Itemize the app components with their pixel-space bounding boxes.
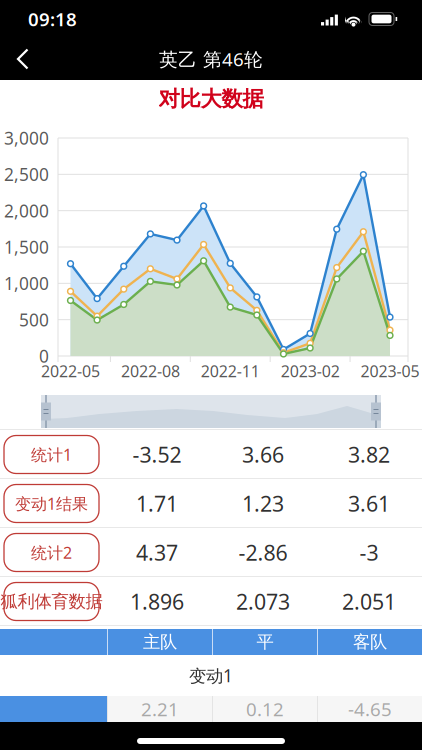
button[interactable]: 统计1	[4, 435, 99, 473]
staticText: 英乙 第46轮	[159, 47, 263, 71]
staticText: 主队	[143, 631, 177, 653]
staticText: 客队	[353, 631, 387, 653]
staticText: 2,500	[4, 163, 49, 186]
staticText: 2.073	[236, 587, 290, 616]
staticText: 3.66	[242, 440, 284, 469]
staticText: -4.65	[348, 697, 392, 721]
staticText: 1,500	[4, 235, 49, 258]
staticText: 2023-05	[360, 360, 419, 382]
staticText: 平	[256, 631, 273, 653]
staticText: 500	[19, 308, 49, 331]
button[interactable]: 变动1结果	[4, 484, 99, 522]
staticText: 变动1结果	[15, 493, 88, 514]
staticText: 2,000	[4, 199, 49, 222]
staticText: 2022-11	[201, 360, 260, 382]
staticText: 2022-05	[41, 360, 100, 382]
staticText: 对比大数据	[158, 86, 263, 112]
staticText: 3.61	[348, 489, 390, 518]
staticText: 2023-02	[281, 360, 340, 382]
staticText: 变动1	[189, 664, 233, 687]
staticText: 1,000	[4, 272, 49, 295]
button[interactable]: Back	[0, 38, 46, 80]
staticText: 09:18	[28, 7, 77, 31]
staticText: -2.86	[238, 538, 287, 567]
button[interactable]: 统计2	[4, 533, 99, 571]
staticText: 3.82	[348, 440, 390, 469]
staticText: -3.52	[132, 440, 181, 469]
staticText: 统计2	[31, 542, 72, 563]
staticText: 0	[39, 344, 49, 367]
staticText: 2.21	[141, 697, 179, 721]
staticText: 3,000	[4, 126, 49, 149]
staticText: 统计1	[31, 444, 72, 465]
staticText: 狐利体育数据	[0, 591, 102, 612]
button[interactable]: 狐利体育数据	[4, 582, 99, 620]
staticText: 2.051	[342, 587, 396, 616]
staticText: 0.12	[246, 697, 284, 721]
staticText: 2022-08	[121, 360, 180, 382]
staticText: -3	[359, 538, 378, 567]
staticText: 4.37	[136, 538, 178, 567]
staticText: 1.71	[136, 489, 178, 518]
staticText: 1.23	[242, 489, 284, 518]
staticText: 1.896	[130, 587, 184, 616]
